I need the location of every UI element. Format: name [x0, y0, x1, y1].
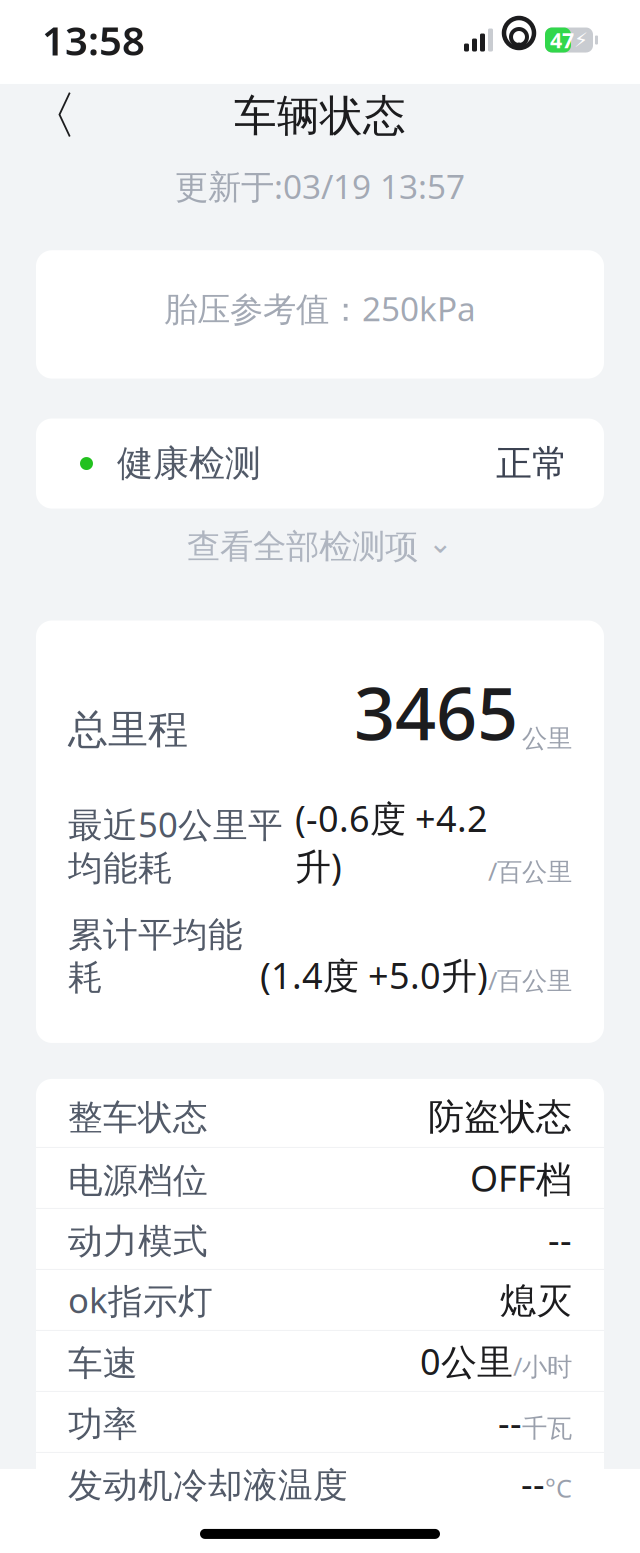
staticText: 累计平均能耗: [68, 914, 243, 999]
staticText: °C: [545, 1471, 572, 1505]
staticText: ⚡︎: [574, 29, 588, 51]
staticText: 车速: [68, 1342, 138, 1385]
staticText: 车辆状态: [234, 90, 406, 142]
staticText: 3465: [354, 664, 518, 760]
staticText: 发动机冷却液温度: [68, 1464, 348, 1507]
staticText: 熄灭: [500, 1279, 572, 1323]
staticText: 功率: [68, 1403, 138, 1446]
staticText: 最近50公里平均能耗: [68, 801, 283, 890]
staticText: /百公里: [488, 963, 572, 997]
staticText: 更新于:03/19 13:57: [175, 164, 465, 208]
staticText: (1.4度 +5.0升): [260, 951, 488, 999]
staticText: ⌄: [428, 526, 453, 559]
staticText: 健康检测: [117, 441, 261, 486]
staticText: 〈: [26, 85, 77, 147]
staticText: 电源档位: [68, 1159, 208, 1202]
staticText: /小时: [513, 1349, 572, 1383]
staticText: OFF档: [470, 1154, 572, 1202]
staticText: --: [521, 1459, 545, 1507]
staticText: 公里: [522, 723, 572, 754]
staticText: 0公里: [420, 1337, 513, 1385]
staticText: 47: [550, 26, 574, 54]
button[interactable]: 返回: [22, 86, 82, 146]
staticText: --: [498, 1398, 522, 1446]
button[interactable]: 健康检测: [0, 418, 640, 508]
staticText: 整车状态: [68, 1096, 208, 1139]
staticText: --: [548, 1215, 572, 1263]
staticText: 查看全部检测项: [187, 526, 418, 567]
staticText: 防盗状态: [428, 1095, 572, 1139]
staticText: 千瓦: [522, 1413, 572, 1444]
staticText: 总里程: [68, 705, 188, 754]
staticText: (-0.6度 +4.2升): [295, 794, 488, 890]
staticText: 正常: [496, 441, 568, 486]
staticText: 13:58: [42, 13, 145, 66]
staticText: /百公里: [488, 854, 572, 888]
staticText: 动力模式: [68, 1220, 208, 1263]
staticText: ok指示灯: [68, 1277, 213, 1323]
button[interactable]: 查看全部检测项: [0, 508, 640, 584]
staticText: 胎压参考值：250kPa: [164, 286, 476, 331]
